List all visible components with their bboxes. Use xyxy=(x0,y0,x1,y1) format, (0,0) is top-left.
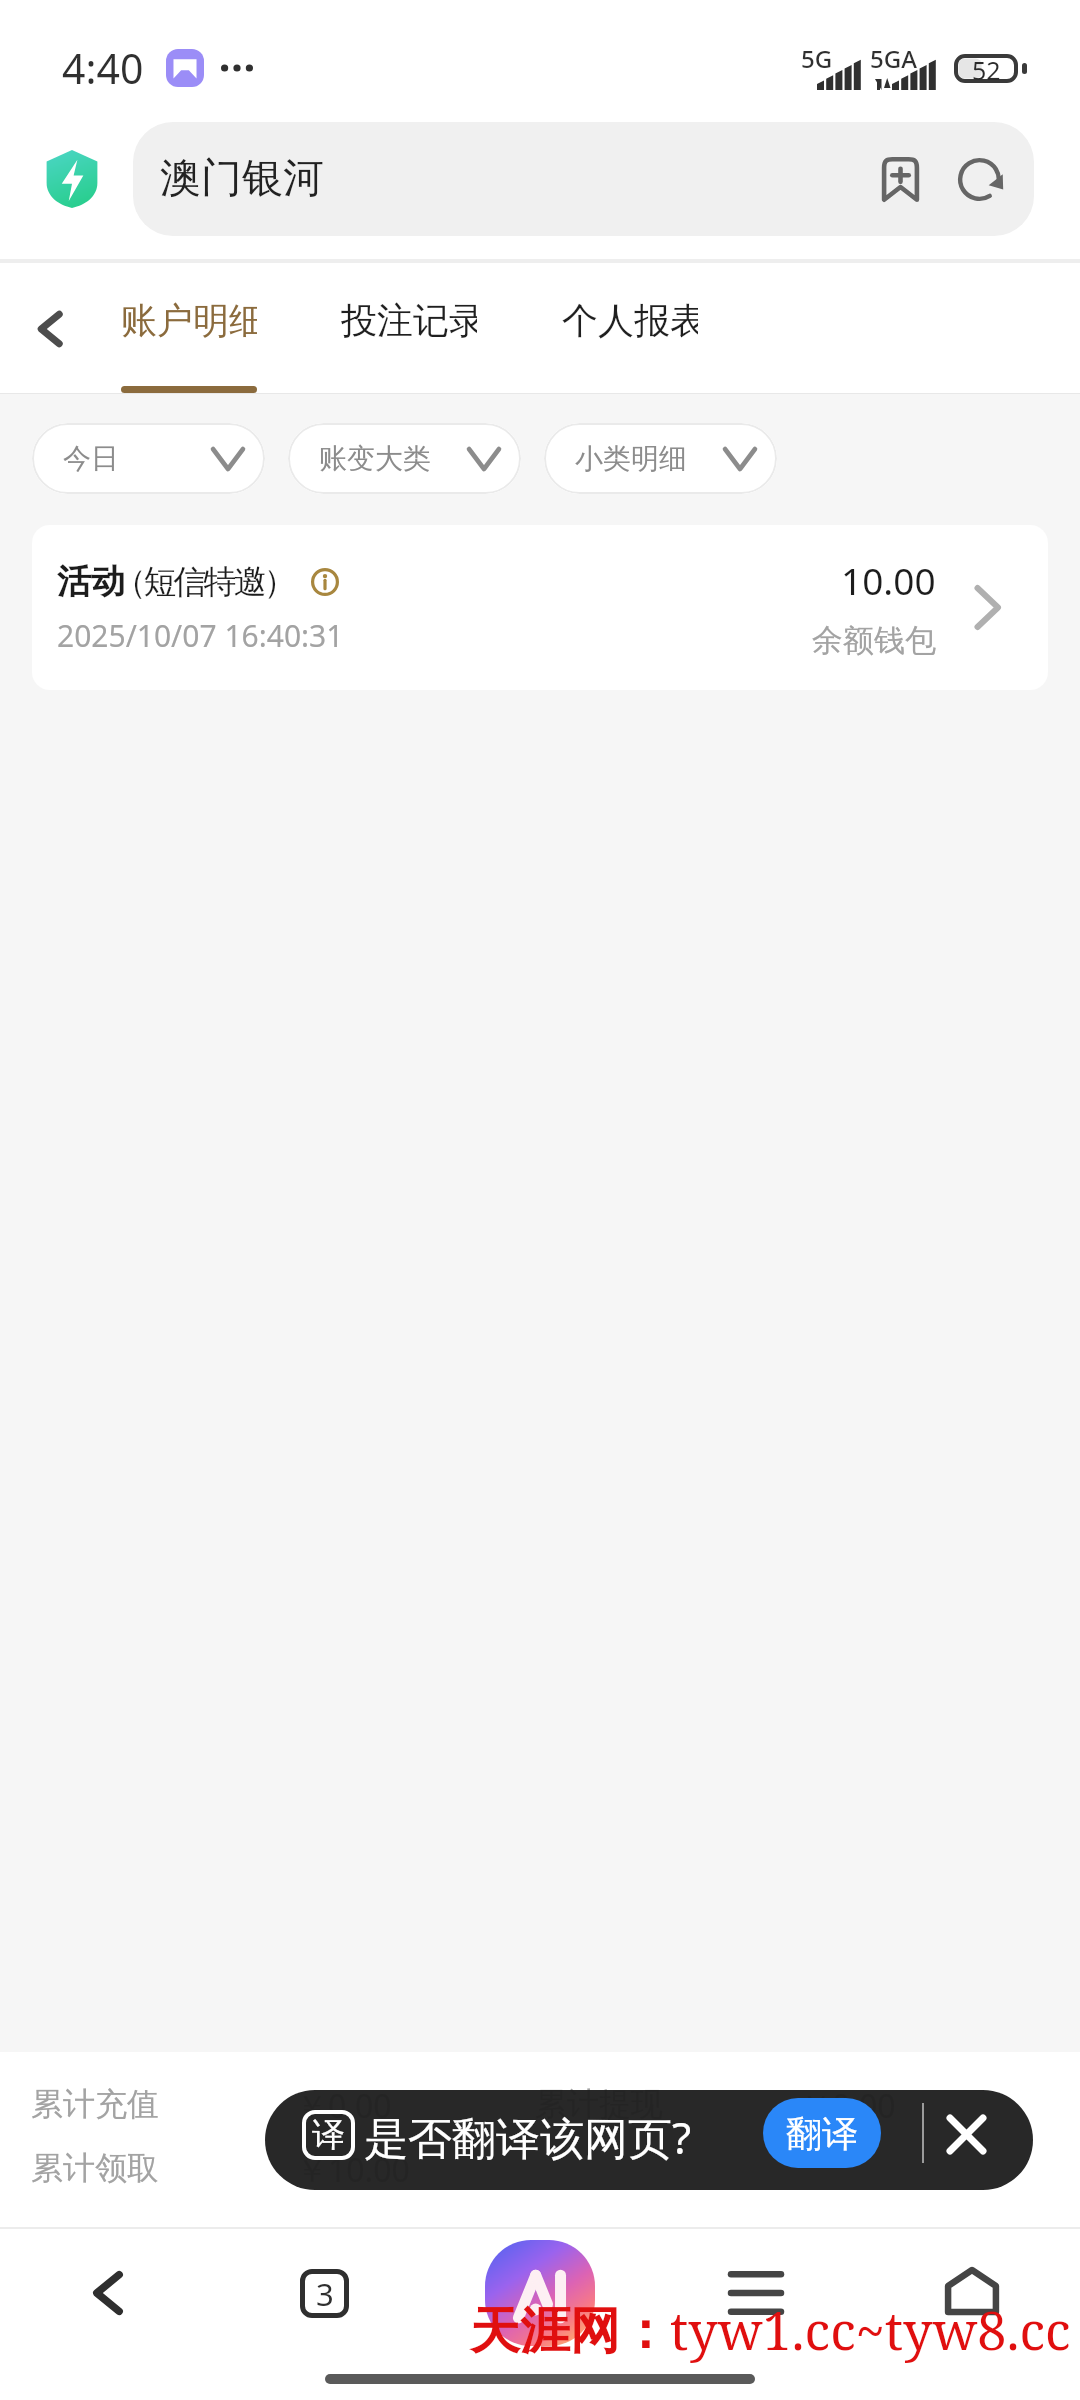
staticText: 账变大类 xyxy=(319,441,431,476)
button[interactable]: Refresh xyxy=(947,147,1011,211)
staticText: （短信特邀） xyxy=(115,561,295,603)
staticText: 投注记录 xyxy=(341,298,477,343)
staticText: 4:40 xyxy=(62,40,144,96)
staticText: 是否翻译该网页? xyxy=(364,2107,692,2167)
staticText: 账户明细 xyxy=(121,298,257,343)
staticText: 余额钱包 xyxy=(812,621,936,660)
button[interactable]: Tabs xyxy=(216,2229,432,2357)
button[interactable]: 账变大类 xyxy=(288,423,521,494)
staticText: 天涯网： xyxy=(470,2300,670,2363)
staticText: 累计领取 xyxy=(31,2148,159,2188)
staticText: tyw1.cc~tyw8.cc xyxy=(670,2294,1071,2365)
staticText: 52 xyxy=(972,53,1001,82)
button[interactable]: Home xyxy=(864,2229,1080,2357)
button[interactable]: 投注记录 xyxy=(341,263,477,394)
button[interactable]: 今日 xyxy=(32,423,265,494)
button[interactable]: 澳门银河 xyxy=(133,122,1034,236)
button[interactable]: Menu xyxy=(648,2229,864,2357)
button[interactable]: 翻译 xyxy=(763,2098,881,2168)
button[interactable]: 个人报表 xyxy=(562,263,698,394)
button[interactable]: 小类明细 xyxy=(544,423,777,494)
button[interactable]: 账户明细 xyxy=(121,263,257,394)
button[interactable]: 活动 xyxy=(32,525,1048,690)
staticText: ￥0.00 xyxy=(800,2084,896,2128)
button[interactable]: AI assistant xyxy=(485,2240,595,2346)
staticText: 2025/10/07 16:40:31 xyxy=(57,615,344,656)
staticText: 译 xyxy=(312,2114,345,2156)
button[interactable]: Back xyxy=(0,263,100,394)
staticText: 个人报表 xyxy=(562,298,698,343)
staticText: 累计充值 xyxy=(31,2084,159,2124)
staticText: 5GA xyxy=(870,42,917,75)
button[interactable]: Site security xyxy=(45,150,99,208)
staticText: 累计提现 xyxy=(535,2084,663,2124)
button[interactable]: AI assistant xyxy=(432,2229,648,2357)
button[interactable]: Add bookmark xyxy=(868,147,932,211)
staticText: ￥10.00 xyxy=(296,2148,410,2192)
button[interactable]: Back xyxy=(0,2229,216,2357)
staticText: 3 xyxy=(316,2273,334,2315)
staticText: 活动 xyxy=(57,560,125,603)
staticText: ￥0.00 xyxy=(296,2084,392,2128)
staticText: 今日 xyxy=(63,441,119,476)
button[interactable]: Close xyxy=(936,2104,996,2164)
staticText: 5G xyxy=(801,42,833,75)
staticText: 澳门银河 xyxy=(160,153,324,205)
staticText: 10.00 xyxy=(841,555,936,605)
staticText: 翻译 xyxy=(786,2111,858,2156)
staticText: 小类明细 xyxy=(575,441,687,476)
